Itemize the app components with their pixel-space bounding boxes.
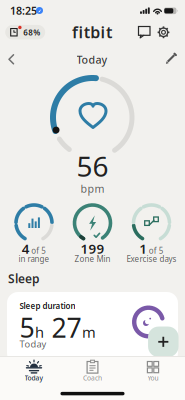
staticText: 5 bbox=[19, 310, 34, 345]
staticText: Today bbox=[76, 52, 107, 67]
staticText: You bbox=[147, 374, 158, 382]
staticText: 4 bbox=[22, 240, 30, 257]
staticText: fitbit bbox=[72, 21, 112, 43]
button[interactable]: Settings bbox=[155, 24, 171, 40]
button[interactable]: Today bbox=[10, 356, 58, 384]
staticText: Today bbox=[19, 338, 46, 350]
staticText: 18:25 bbox=[10, 3, 37, 18]
staticText: of 5 bbox=[31, 245, 46, 256]
button[interactable]: Coach bbox=[68, 356, 116, 384]
staticText: Sleep bbox=[8, 270, 40, 286]
staticText: 68% bbox=[23, 27, 40, 38]
button[interactable]: 199 Zone Minutes bbox=[62, 200, 122, 266]
staticText: m bbox=[82, 322, 96, 342]
button[interactable]: Heart rate 56 bpm bbox=[40, 74, 145, 198]
staticText: 199 bbox=[80, 240, 104, 257]
button[interactable]: Back bbox=[4, 53, 18, 66]
button[interactable]: Edit bbox=[164, 52, 177, 65]
staticText: h bbox=[35, 322, 44, 342]
staticText: of 5 bbox=[149, 245, 164, 256]
staticText: Zone Min bbox=[74, 254, 110, 264]
button[interactable]: Messages bbox=[137, 24, 152, 40]
staticText: bpm bbox=[80, 181, 104, 196]
staticText: 56 bbox=[76, 147, 108, 185]
button[interactable]: You bbox=[129, 356, 177, 384]
staticText: Today bbox=[24, 374, 43, 382]
button[interactable]: Device battery 68% bbox=[5, 25, 45, 39]
staticText: in range bbox=[18, 254, 49, 264]
button[interactable]: Log bbox=[148, 327, 179, 357]
button[interactable]: Sleep duration 5 hours 27 minutes, Today bbox=[7, 292, 178, 364]
staticText: Coach bbox=[83, 374, 102, 382]
staticText: 27 bbox=[44, 310, 81, 345]
staticText: Exercise days bbox=[126, 254, 176, 264]
staticText: Sleep duration bbox=[19, 301, 75, 311]
staticText: 1 bbox=[139, 240, 147, 257]
button[interactable]: 1 of 5 exercise days bbox=[121, 200, 181, 266]
button[interactable]: Heart rate 4 of 5 days in range bbox=[4, 200, 64, 266]
